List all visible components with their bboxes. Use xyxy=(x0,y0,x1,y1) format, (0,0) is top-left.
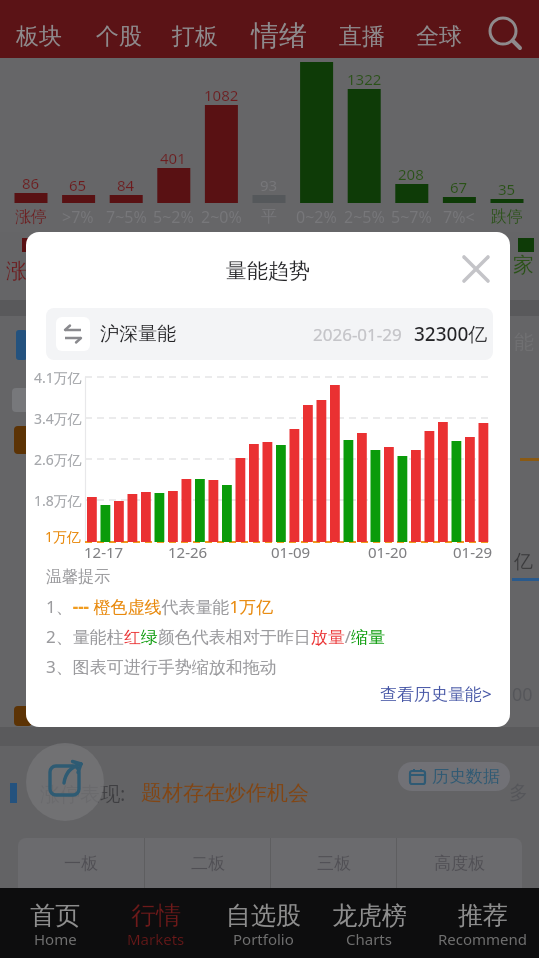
staticText: Markets xyxy=(127,929,185,947)
button[interactable]: 情绪 xyxy=(243,13,315,57)
staticText: 首页 xyxy=(30,900,80,931)
staticText: 涨停表现: xyxy=(40,780,126,806)
staticText: 多 xyxy=(509,781,528,805)
staticText: 2、量能柱红绿颜色代表相对于昨日放量/缩量 xyxy=(46,625,386,648)
staticText: 7~5% xyxy=(106,206,147,228)
button[interactable]: 题材存在炒作机会 xyxy=(141,779,341,807)
staticText: 涨停 xyxy=(15,207,47,227)
staticText: 4.1万亿 xyxy=(34,368,82,387)
button[interactable]: 个股 xyxy=(90,17,147,55)
staticText: 3、图表可进行手势缩放和拖动 xyxy=(46,655,277,678)
staticText: 三板 xyxy=(317,853,351,874)
staticText: 题材存在炒作机会 xyxy=(141,780,309,806)
staticText: 1322 xyxy=(347,69,382,89)
staticText: 00 xyxy=(512,682,533,706)
staticText: Home xyxy=(34,929,77,947)
button[interactable] xyxy=(26,743,104,821)
staticText: 1、--- 橙色虚线代表量能1万亿 xyxy=(46,595,274,618)
staticText: 家 xyxy=(513,252,534,278)
staticText: >7% xyxy=(62,206,94,228)
staticText: 35 xyxy=(498,179,516,199)
staticText: 查看历史量能> xyxy=(380,682,492,705)
button[interactable]: 板块 xyxy=(10,17,67,55)
button[interactable]: 查看历史量能> xyxy=(322,680,492,706)
staticText: 208 xyxy=(398,164,424,184)
staticText: 3.4万亿 xyxy=(34,409,82,428)
button[interactable]: 直播 xyxy=(333,17,390,55)
staticText: 12-17 xyxy=(84,542,124,562)
staticText: 2026-01-29 xyxy=(313,323,402,346)
staticText: 5~7% xyxy=(391,206,432,228)
button[interactable] xyxy=(485,11,529,55)
button[interactable]: 二板 xyxy=(145,838,270,888)
staticText: 历史数据 xyxy=(432,766,500,787)
staticText: 二板 xyxy=(191,853,225,874)
staticText: 全球 xyxy=(416,22,462,51)
button[interactable]: 全球 xyxy=(410,17,467,55)
staticText: 5~2% xyxy=(153,206,194,228)
button[interactable] xyxy=(0,888,105,958)
staticText: Charts xyxy=(346,929,392,947)
staticText: 67 xyxy=(450,177,468,197)
staticText: 7%< xyxy=(443,206,475,228)
staticText: 涨 xyxy=(6,258,27,284)
button[interactable]: 高度板 xyxy=(397,838,522,888)
staticText: 直播 xyxy=(339,22,385,51)
button[interactable] xyxy=(458,251,494,287)
staticText: 86 xyxy=(22,173,40,193)
staticText: 32300亿 xyxy=(414,321,488,347)
staticText: 能 xyxy=(514,330,534,354)
staticText: 温馨提示 xyxy=(46,567,110,587)
staticText: 12-26 xyxy=(168,542,208,562)
staticText: 01-20 xyxy=(368,542,408,562)
staticText: 高度板 xyxy=(434,853,485,874)
staticText: 亿 xyxy=(514,550,533,574)
button[interactable] xyxy=(426,888,539,958)
button[interactable] xyxy=(105,888,210,958)
button[interactable]: 沪深量能 xyxy=(46,308,493,360)
staticText: 01-29 xyxy=(453,542,493,562)
button[interactable] xyxy=(210,888,316,958)
staticText: 板块 xyxy=(16,22,62,51)
staticText: 自选股 xyxy=(226,900,301,931)
staticText: 打板 xyxy=(172,22,218,51)
staticText: 401 xyxy=(160,148,186,168)
staticText: 1082 xyxy=(204,85,239,105)
staticText: 65 xyxy=(69,175,87,195)
staticText: 推荐 xyxy=(458,900,508,931)
button[interactable] xyxy=(316,888,426,958)
staticText: 2~5% xyxy=(344,206,385,228)
button[interactable]: 三板 xyxy=(271,838,396,888)
staticText: 2.6万亿 xyxy=(34,450,82,469)
staticText: 龙虎榜 xyxy=(332,900,407,931)
staticText: 1万亿 xyxy=(45,527,82,546)
button[interactable]: 历史数据 xyxy=(398,762,510,791)
staticText: 跌停 xyxy=(491,207,523,227)
staticText: Portfolio xyxy=(233,929,294,947)
button[interactable]: 一板 xyxy=(18,838,144,888)
staticText: 平 xyxy=(261,207,277,227)
staticText: 沪深量能 xyxy=(100,322,176,346)
staticText: 2~0% xyxy=(201,206,242,228)
staticText: 情绪 xyxy=(251,18,307,53)
staticText: 93 xyxy=(260,175,278,195)
staticText: 一板 xyxy=(64,853,98,874)
staticText: 量能趋势 xyxy=(226,258,310,284)
staticText: 84 xyxy=(117,175,135,195)
staticText: 0~2% xyxy=(296,206,337,228)
staticText: 01-09 xyxy=(271,542,311,562)
button[interactable]: 打板 xyxy=(166,17,223,55)
staticText: 行情 xyxy=(131,900,181,931)
staticText: 个股 xyxy=(96,22,142,51)
staticText: Recommend xyxy=(438,929,528,947)
staticText: 1.8万亿 xyxy=(34,491,82,510)
